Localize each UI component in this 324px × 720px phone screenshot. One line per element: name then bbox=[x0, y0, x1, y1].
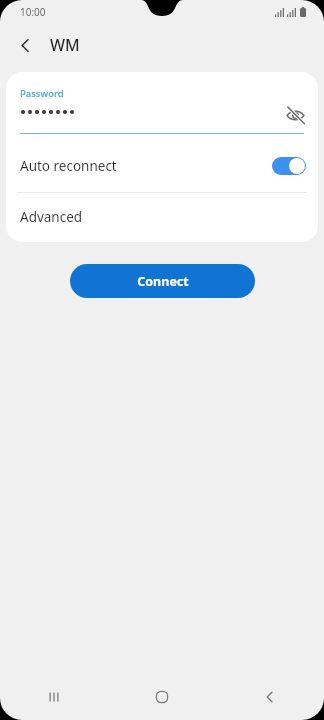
staticText: WM bbox=[50, 34, 80, 56]
button[interactable]: Show password bbox=[280, 100, 310, 130]
button[interactable]: Back bbox=[8, 28, 42, 62]
button[interactable]: Auto reconnect bbox=[6, 140, 318, 192]
button[interactable]: Connect bbox=[70, 264, 255, 298]
button[interactable]: Home bbox=[108, 674, 216, 720]
button[interactable]: Back bbox=[216, 674, 324, 720]
staticText: 10:00 bbox=[20, 5, 46, 19]
staticText: Advanced bbox=[20, 208, 83, 226]
staticText: Connect bbox=[137, 273, 189, 290]
button[interactable]: Advanced bbox=[6, 193, 318, 241]
staticText: Password bbox=[20, 87, 64, 100]
staticText: Auto reconnect bbox=[20, 157, 117, 175]
button[interactable]: Password bbox=[6, 72, 318, 140]
button[interactable]: Recents bbox=[0, 674, 108, 720]
button[interactable]: Auto reconnect toggle bbox=[272, 157, 306, 175]
